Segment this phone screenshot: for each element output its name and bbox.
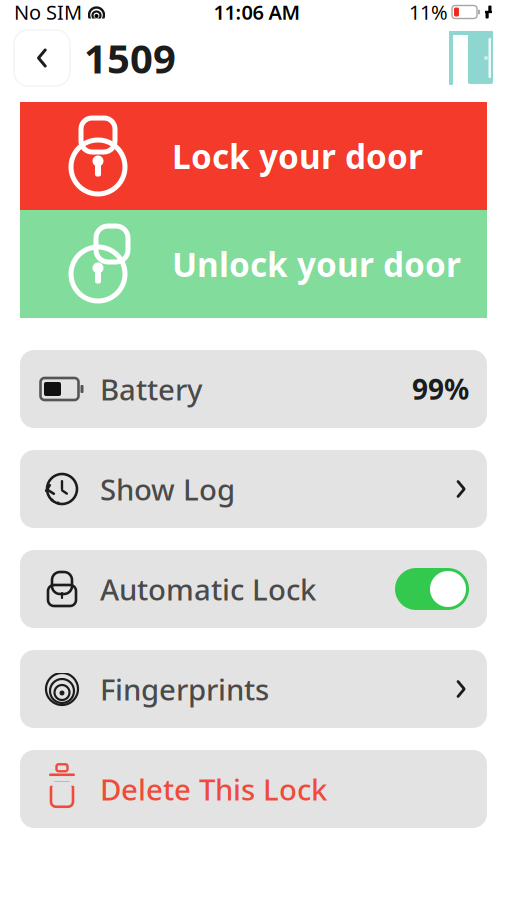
staticText: Lock your door [172,134,423,178]
staticText: 11% [409,0,448,25]
button[interactable]: Automatic Lock [20,550,487,628]
button[interactable]: Delete This Lock [20,750,487,828]
staticText: Battery [100,369,202,408]
staticText: No SIM [14,0,82,25]
button[interactable]: Door status [449,31,493,85]
staticText: Fingerprints [100,669,269,708]
button[interactable]: Unlock your door [20,210,487,318]
staticText: 11:06 AM [213,0,300,25]
button[interactable]: Battery [20,350,487,428]
button[interactable]: Lock your door [20,102,487,210]
staticText: 99% [412,370,469,408]
staticText: Unlock your door [172,242,461,286]
button[interactable]: Fingerprints [20,650,487,728]
staticText: Show Log [100,469,235,508]
button[interactable]: Show Log [20,450,487,528]
staticText: Automatic Lock [100,569,316,608]
staticText: 1509 [84,31,176,84]
staticText: Delete This Lock [100,769,327,808]
button[interactable]: Back [14,30,70,86]
